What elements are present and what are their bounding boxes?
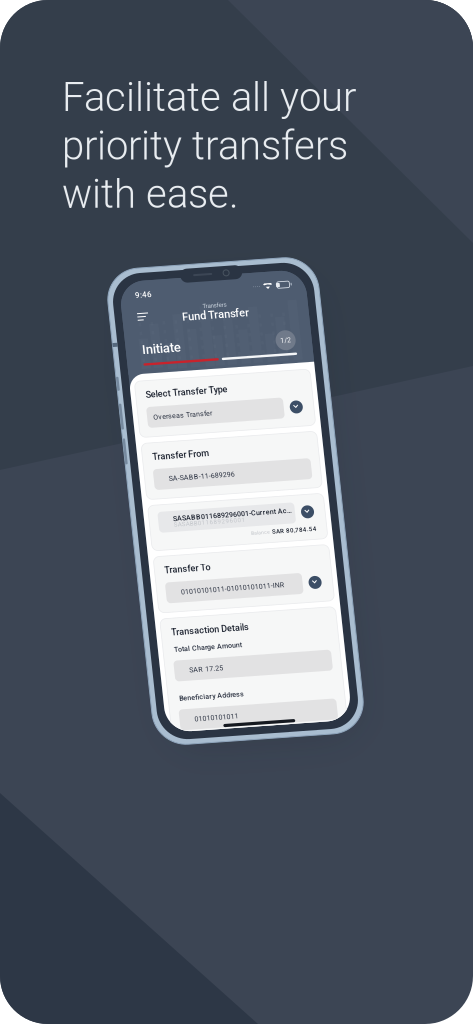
staticText: Beneficiary Address [158, 690, 223, 698]
staticText: ···· [275, 285, 283, 292]
staticText: Transfer From [157, 446, 214, 456]
staticText: Transaction Details [157, 622, 235, 633]
staticText: Facilitate all your [62, 74, 356, 121]
staticText: priority transfers [62, 122, 348, 169]
staticText: Total Charge Amount [158, 641, 226, 649]
button[interactable]: SAR 17.25 [147, 656, 323, 677]
button[interactable]: SA-SABB-11-689296 [147, 463, 323, 484]
staticText: SASABB011689296001-Current Acc… [171, 510, 293, 518]
staticText: SAR 17.25 [171, 662, 205, 671]
staticText: Initiate [158, 336, 197, 351]
staticText: Transfer To [157, 560, 203, 570]
staticText: with ease. [62, 171, 239, 218]
button[interactable]: Overseas Transfer [147, 401, 323, 422]
staticText: 01010101011-01010101011-INR [171, 584, 275, 592]
button[interactable]: 01010101011 [147, 705, 323, 726]
staticText: SAR 80,784.54 [268, 530, 313, 538]
staticText: Transfers [223, 301, 247, 308]
button[interactable]: 01010101011-01010101011-INR [147, 577, 323, 598]
staticText: Select Transfer Type [157, 383, 239, 394]
staticText: Fund Transfer [202, 308, 269, 320]
staticText: Overseas Transfer [162, 407, 221, 416]
staticText: 01010101011 [171, 711, 215, 720]
button[interactable]: SASABB011689296001-Current Acc… [147, 506, 323, 527]
staticText: SA-SABB-11-689296 [171, 470, 237, 478]
staticText: SASABB011689296001 [171, 516, 243, 524]
staticText: Balance [247, 531, 266, 537]
